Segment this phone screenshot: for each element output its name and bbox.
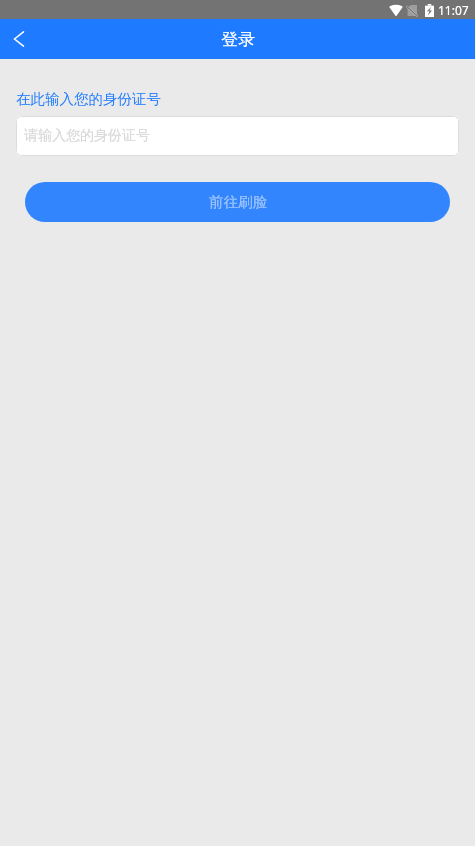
staticText: 11:07 bbox=[438, 2, 469, 18]
staticText: 前往刷脸 bbox=[209, 193, 267, 211]
button[interactable]: Back bbox=[0, 19, 38, 59]
staticText: 请输入您的身份证号 bbox=[24, 127, 150, 145]
staticText: 在此输入您的身份证号 bbox=[16, 90, 161, 108]
staticText: 登录 bbox=[221, 29, 255, 50]
button[interactable]: 前往刷脸 bbox=[25, 182, 450, 222]
button[interactable]: 请输入您的身份证号 bbox=[16, 116, 459, 156]
